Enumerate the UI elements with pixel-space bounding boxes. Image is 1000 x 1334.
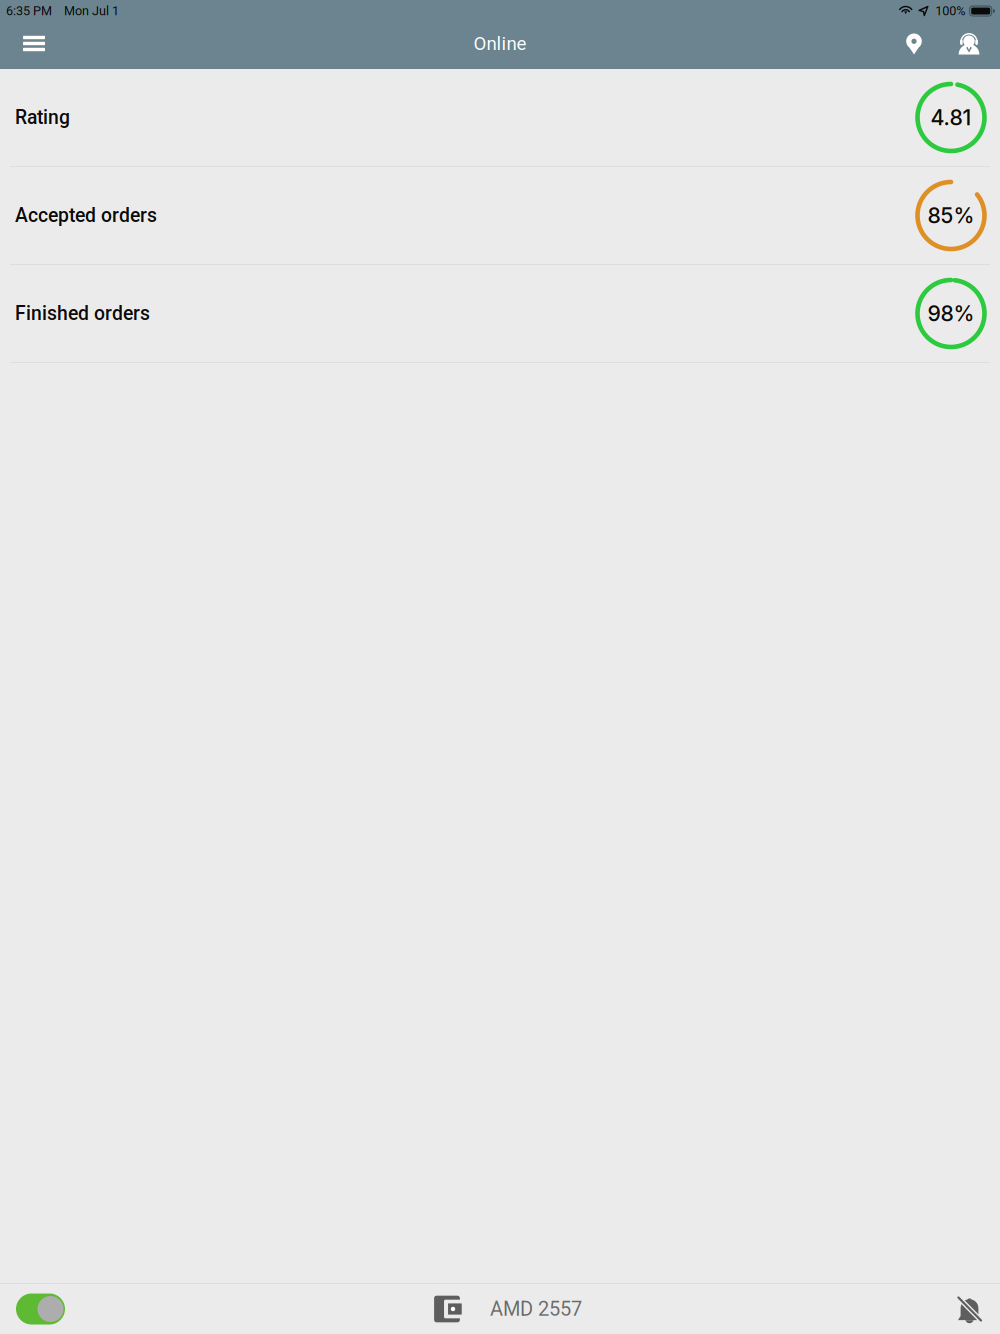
button[interactable]: Menu [19,28,49,58]
staticText: 85% [927,203,974,228]
staticText: 6:35 PM [6,4,52,18]
button[interactable]: Accepted orders [0,167,1000,264]
staticText: AMD 2557 [490,1297,582,1321]
button[interactable]: Rating [0,69,1000,166]
staticText: Mon Jul 1 [64,4,119,18]
button[interactable]: AMD 2557 [434,1296,582,1322]
button[interactable]: Notifications [957,1294,982,1323]
staticText: Online [473,33,526,54]
button[interactable]: Go offline [16,1293,65,1324]
staticText: 4.81 [930,105,971,130]
staticText: 98% [927,301,974,326]
button[interactable]: Location [899,28,929,58]
button[interactable]: Finished orders [0,265,1000,362]
staticText: Accepted orders [15,204,157,227]
staticText: Rating [15,106,70,129]
button[interactable]: Support [954,28,984,58]
staticText: 100% [935,4,965,18]
staticText: Finished orders [15,302,150,325]
